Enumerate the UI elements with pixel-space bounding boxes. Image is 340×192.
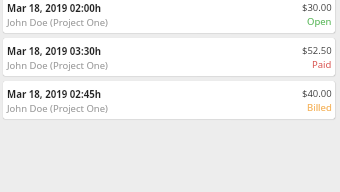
button[interactable]: Mar 18, 2019 02:00h bbox=[3, 0, 335, 33]
button[interactable]: Mar 18, 2019 02:45h bbox=[3, 81, 335, 119]
staticText: Paid bbox=[312, 58, 332, 71]
button[interactable]: Mar 18, 2019 03:30h bbox=[3, 38, 335, 76]
staticText: $40.00 bbox=[302, 87, 332, 100]
staticText: Open bbox=[307, 15, 332, 28]
staticText: John Doe (Project One) bbox=[7, 102, 108, 115]
staticText: Mar 18, 2019 03:30h bbox=[7, 45, 102, 58]
staticText: $30.00 bbox=[302, 1, 332, 14]
staticText: Billed bbox=[307, 101, 332, 114]
staticText: John Doe (Project One) bbox=[7, 59, 108, 72]
staticText: $52.50 bbox=[302, 44, 332, 57]
staticText: John Doe (Project One) bbox=[7, 16, 108, 29]
staticText: Mar 18, 2019 02:45h bbox=[7, 88, 102, 101]
staticText: Mar 18, 2019 02:00h bbox=[7, 2, 102, 15]
